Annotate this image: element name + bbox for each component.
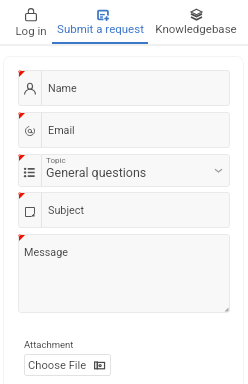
button[interactable]: Name — [18, 70, 230, 106]
staticText: Email — [48, 124, 75, 137]
staticText: Name — [48, 82, 77, 95]
button[interactable]: Log in — [0, 0, 62, 44]
button[interactable]: Choose File — [24, 354, 111, 376]
other: Open topic list — [214, 166, 223, 175]
staticText: Knowledgebase — [155, 22, 237, 35]
staticText: Topic — [46, 156, 66, 165]
staticText: Subject — [48, 204, 84, 217]
button[interactable]: Submit a request — [52, 0, 148, 44]
staticText: Message — [24, 246, 68, 259]
staticText: Log in — [15, 24, 47, 37]
staticText: Submit a request — [57, 22, 144, 35]
button[interactable]: Message — [18, 234, 230, 313]
button[interactable]: Subject — [18, 192, 230, 228]
staticText: General questions — [46, 165, 147, 180]
button[interactable]: Topic — [18, 154, 230, 187]
staticText: Attachment — [24, 339, 74, 350]
staticText: Choose File — [28, 359, 87, 372]
button[interactable]: Email — [18, 112, 230, 148]
other: Choose file — [94, 360, 105, 371]
button[interactable]: Knowledgebase — [148, 0, 244, 44]
